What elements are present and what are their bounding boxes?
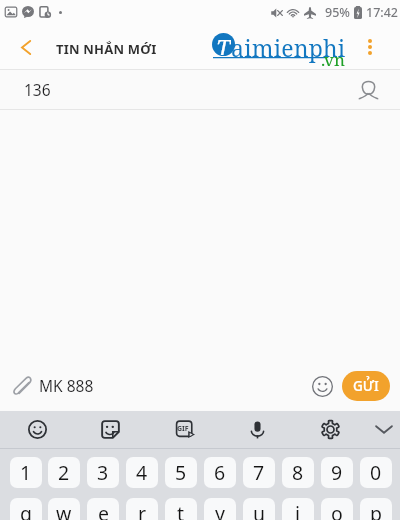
button[interactable]: 2 <box>48 457 80 488</box>
button[interactable]: GỬI <box>342 371 390 401</box>
staticText: 6 <box>214 459 226 486</box>
staticText: 3 <box>97 459 109 486</box>
staticText: o <box>331 500 343 520</box>
staticText: 5 <box>175 459 187 486</box>
staticText: 1 <box>20 459 32 486</box>
button[interactable]: e <box>87 498 119 520</box>
button[interactable]: r <box>126 498 158 520</box>
staticText: MK 888 <box>39 375 94 396</box>
button[interactable]: Stickers <box>90 411 130 448</box>
button[interactable]: 3 <box>87 457 119 488</box>
button[interactable]: t <box>165 498 197 520</box>
staticText: 17:42 <box>366 4 399 21</box>
staticText: r <box>138 500 147 520</box>
button[interactable]: Back <box>7 26 45 68</box>
button[interactable]: Emoji <box>17 411 57 448</box>
staticText: GỬI <box>353 377 379 395</box>
button[interactable]: y <box>204 498 236 520</box>
staticText: TIN NHẮN MỚI <box>56 40 157 58</box>
staticText: 7 <box>253 459 265 486</box>
staticText: e <box>98 500 109 520</box>
button[interactable]: w <box>48 498 80 520</box>
button[interactable]: i <box>282 498 314 520</box>
button[interactable]: 9 <box>321 457 353 488</box>
staticText: 4 <box>136 459 148 486</box>
staticText: 2 <box>58 459 70 486</box>
button[interactable]: 8 <box>282 457 314 488</box>
staticText: 136 <box>24 79 51 100</box>
button[interactable]: 4 <box>126 457 158 488</box>
button[interactable]: 1 <box>10 457 42 488</box>
staticText: i <box>295 500 301 520</box>
button[interactable]: Attach <box>4 368 40 404</box>
staticText: 95% <box>325 4 350 21</box>
staticText: 0 <box>370 459 382 486</box>
button[interactable]: Contacts <box>350 72 386 108</box>
button[interactable]: o <box>321 498 353 520</box>
button[interactable]: 0 <box>360 457 392 488</box>
staticText: 9 <box>331 459 343 486</box>
button[interactable]: 7 <box>243 457 275 488</box>
button[interactable]: Settings <box>310 411 350 448</box>
staticText: 8 <box>292 459 304 486</box>
button[interactable]: GIF <box>165 411 205 448</box>
button[interactable]: 5 <box>165 457 197 488</box>
button[interactable]: 6 <box>204 457 236 488</box>
staticText: u <box>253 500 266 520</box>
staticText: T <box>216 33 231 55</box>
button[interactable]: Emoji <box>311 375 333 397</box>
staticText: w <box>56 500 72 520</box>
button[interactable]: More options <box>356 26 384 68</box>
button[interactable]: u <box>243 498 275 520</box>
staticText: .vn <box>321 48 345 71</box>
staticText: y <box>215 500 225 520</box>
button[interactable]: q <box>10 498 42 520</box>
button[interactable]: Voice input <box>237 411 277 448</box>
staticText: aimienphi <box>231 32 346 63</box>
button[interactable]: p <box>360 498 392 520</box>
button[interactable]: Collapse keyboard <box>364 411 400 448</box>
staticText: p <box>370 500 382 520</box>
staticText: t <box>177 500 185 520</box>
staticText: GIF <box>177 424 189 434</box>
staticText: q <box>20 500 32 520</box>
